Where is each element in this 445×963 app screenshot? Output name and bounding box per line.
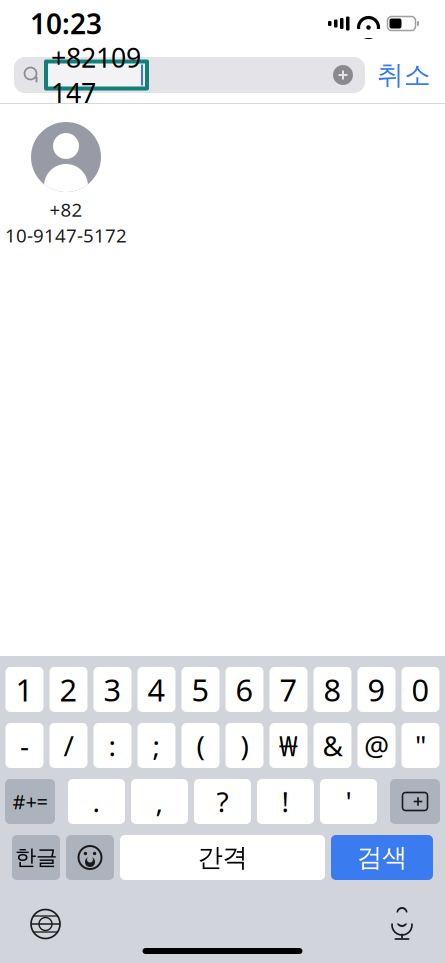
button[interactable]: . bbox=[68, 779, 125, 824]
button[interactable]: / bbox=[49, 723, 87, 768]
staticText: 9 bbox=[367, 669, 385, 710]
staticText: & bbox=[322, 727, 342, 764]
button[interactable]: 7 bbox=[269, 667, 307, 712]
staticText: 0 bbox=[411, 669, 429, 710]
button[interactable]: , bbox=[131, 779, 188, 824]
button[interactable]: ( bbox=[181, 723, 219, 768]
staticText: . bbox=[92, 783, 100, 820]
button[interactable]: 간격 bbox=[120, 835, 325, 880]
staticText: #+= bbox=[12, 788, 47, 815]
button[interactable]: - bbox=[5, 723, 43, 768]
staticText: 1 bbox=[15, 669, 33, 710]
staticText: 한글 bbox=[15, 844, 57, 871]
staticText: 6 bbox=[235, 669, 253, 710]
staticText: +82109147 bbox=[51, 40, 141, 110]
staticText: +82 bbox=[49, 197, 82, 222]
staticText: 5 bbox=[191, 669, 209, 710]
staticText: - bbox=[20, 727, 29, 764]
staticText: ) bbox=[240, 727, 248, 764]
button[interactable]: @ bbox=[357, 723, 395, 768]
staticText: ; bbox=[152, 727, 160, 764]
button[interactable]: ₩ bbox=[269, 723, 307, 768]
button[interactable]: & bbox=[313, 723, 351, 768]
button[interactable]: Dictation bbox=[389, 906, 415, 942]
staticText: 3 bbox=[103, 669, 121, 710]
staticText: : bbox=[108, 727, 116, 764]
staticText: ? bbox=[216, 783, 228, 820]
staticText: 8 bbox=[323, 669, 341, 710]
button[interactable]: 6 bbox=[225, 667, 263, 712]
staticText: ( bbox=[196, 727, 204, 764]
staticText: 간격 bbox=[197, 842, 247, 873]
button[interactable]: 0 bbox=[401, 667, 439, 712]
button[interactable]: ' bbox=[320, 779, 377, 824]
button[interactable]: #+= bbox=[5, 779, 55, 824]
button[interactable]: ! bbox=[257, 779, 314, 824]
staticText: ' bbox=[345, 783, 351, 820]
button[interactable]: Next keyboard bbox=[30, 908, 61, 939]
button[interactable]: Delete bbox=[390, 779, 440, 824]
button[interactable]: +82 bbox=[0, 104, 132, 248]
button[interactable]: ? bbox=[194, 779, 251, 824]
staticText: 10-9147-5172 bbox=[5, 223, 127, 248]
button[interactable]: Clear text bbox=[333, 65, 353, 85]
button[interactable]: ; bbox=[137, 723, 175, 768]
button[interactable]: 5 bbox=[181, 667, 219, 712]
button[interactable]: : bbox=[93, 723, 131, 768]
staticText: 4 bbox=[147, 669, 165, 710]
button[interactable]: " bbox=[401, 723, 439, 768]
button[interactable]: 3 bbox=[93, 667, 131, 712]
button[interactable]: 9 bbox=[357, 667, 395, 712]
staticText: @ bbox=[364, 727, 389, 764]
staticText: 7 bbox=[279, 669, 297, 710]
staticText: 10:23 bbox=[30, 5, 102, 42]
button[interactable]: 검색 bbox=[331, 835, 433, 880]
button[interactable]: 1 bbox=[5, 667, 43, 712]
staticText: " bbox=[415, 727, 426, 764]
button[interactable]: ) bbox=[225, 723, 263, 768]
staticText: , bbox=[155, 783, 163, 820]
button[interactable]: 2 bbox=[49, 667, 87, 712]
button[interactable]: Emoji bbox=[66, 835, 114, 880]
staticText: 취소 bbox=[377, 59, 431, 91]
button[interactable]: 취소 bbox=[377, 59, 431, 91]
button[interactable]: 한글 bbox=[12, 835, 60, 880]
staticText: / bbox=[63, 727, 73, 764]
staticText: ! bbox=[281, 783, 289, 820]
staticText: 검색 bbox=[357, 842, 407, 873]
button[interactable]: 8 bbox=[313, 667, 351, 712]
staticText: 2 bbox=[59, 669, 77, 710]
staticText: ₩ bbox=[279, 727, 298, 764]
button[interactable]: 4 bbox=[137, 667, 175, 712]
